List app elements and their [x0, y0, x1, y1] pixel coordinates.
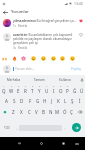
staticText: U	[45, 88, 49, 94]
staticText: O	[59, 88, 63, 94]
button[interactable]	[50, 55, 57, 62]
button[interactable]: Like	[78, 33, 83, 40]
staticText: 3	[18, 85, 20, 88]
staticText: I	[53, 88, 55, 94]
button[interactable]: K	[55, 95, 62, 106]
staticText: R	[24, 88, 27, 94]
staticText: .	[64, 126, 65, 130]
button[interactable]: V	[33, 106, 40, 118]
button[interactable]	[59, 55, 66, 62]
staticText: A	[5, 98, 8, 104]
staticText: P	[66, 88, 69, 94]
staticText: Ü	[80, 88, 84, 94]
button[interactable]: D	[18, 95, 26, 106]
button[interactable]	[1, 55, 8, 62]
button[interactable]: Recent apps	[59, 137, 67, 150]
staticText: Ş	[71, 98, 74, 104]
button[interactable]: Paylaş	[70, 66, 82, 72]
staticText: E	[17, 88, 20, 94]
button[interactable]: N	[47, 106, 54, 118]
button[interactable]: Backspace	[75, 106, 85, 118]
staticText: 2	[11, 85, 13, 88]
button[interactable]: Shift	[0, 106, 9, 118]
button[interactable]: Send	[67, 118, 85, 137]
staticText: J	[51, 98, 53, 104]
button[interactable]: G	[34, 95, 41, 106]
staticText: S	[13, 98, 16, 104]
staticText: N	[49, 109, 53, 115]
staticText: Tamam	[34, 78, 45, 82]
button[interactable]: ozanbttrr Bu anlattıklarını çok kapsamlı…	[0, 33, 85, 50]
button[interactable]: yilmazdemirxx Bu fotoğraf gerçekten çok …	[0, 19, 85, 28]
staticText: ,	[16, 126, 17, 130]
staticText: 13:40	[74, 1, 83, 6]
button[interactable]: Back	[15, 137, 23, 150]
button[interactable]	[69, 55, 76, 62]
button[interactable]: Voice input	[78, 75, 85, 84]
button[interactable]: M	[54, 106, 61, 118]
button[interactable]: Home	[37, 137, 45, 150]
button[interactable]: 9	[57, 84, 64, 95]
button[interactable]: Ü	[78, 84, 85, 95]
button[interactable]: B	[40, 106, 47, 118]
button[interactable]: L	[62, 95, 69, 106]
button[interactable]: Tamam	[26, 75, 52, 84]
button[interactable]: 4	[22, 84, 29, 95]
button[interactable]: 2	[8, 84, 15, 95]
button[interactable]: 6	[36, 84, 43, 95]
button[interactable]: Ğ	[71, 84, 78, 95]
staticText: Y	[38, 88, 41, 94]
button[interactable]: 3	[15, 84, 22, 95]
button[interactable]: Kullanıcı	[52, 75, 78, 84]
staticText: 1s	[13, 24, 16, 28]
button[interactable]: Merhaba	[1, 75, 26, 84]
staticText: Merhaba	[7, 78, 21, 82]
staticText: 7	[46, 85, 48, 88]
staticText: B	[42, 109, 45, 115]
staticText: 5	[32, 85, 34, 88]
staticText: G	[36, 98, 40, 104]
staticText: 9	[60, 85, 62, 88]
button[interactable]	[30, 55, 37, 62]
button[interactable]: A	[2, 95, 10, 106]
button[interactable]: Back	[1, 8, 9, 16]
button[interactable]: F	[26, 95, 34, 106]
button[interactable]: Z	[9, 106, 17, 118]
button[interactable]: 5	[29, 84, 36, 95]
button[interactable]: Hide keyboard	[72, 137, 81, 150]
button[interactable]: 7	[43, 84, 50, 95]
staticText: Ö	[63, 109, 67, 115]
button[interactable]: 1	[0, 84, 8, 95]
staticText: Ç	[70, 109, 73, 115]
staticText: Yanıtla	[18, 46, 28, 50]
button[interactable]: H	[41, 95, 48, 106]
button[interactable]: Ş	[69, 95, 76, 106]
staticText: F	[29, 98, 32, 104]
button[interactable]: Ö	[61, 106, 68, 118]
button[interactable]: ?123	[0, 118, 13, 137]
button[interactable]: S	[10, 95, 18, 106]
button[interactable]: J	[48, 95, 55, 106]
button[interactable]	[20, 55, 27, 62]
button[interactable]: 8	[50, 84, 57, 95]
staticText: 1	[3, 85, 5, 88]
staticText: Q	[2, 88, 6, 94]
staticText: Yorumlar	[11, 9, 29, 14]
button[interactable]: Ç	[68, 106, 75, 118]
button[interactable]	[11, 55, 18, 62]
staticText: 3s	[13, 46, 16, 50]
staticText: D	[20, 98, 24, 104]
staticText: Kullanıcı	[59, 78, 72, 82]
button[interactable]	[40, 55, 47, 62]
button[interactable]: İ	[76, 95, 83, 106]
button[interactable]: X	[17, 106, 25, 118]
button[interactable]: Like	[78, 19, 83, 26]
staticText: Yorum ekle...	[15, 67, 35, 71]
staticText: X	[20, 109, 23, 115]
button[interactable]: C	[25, 106, 33, 118]
button[interactable]: 0	[64, 84, 71, 95]
